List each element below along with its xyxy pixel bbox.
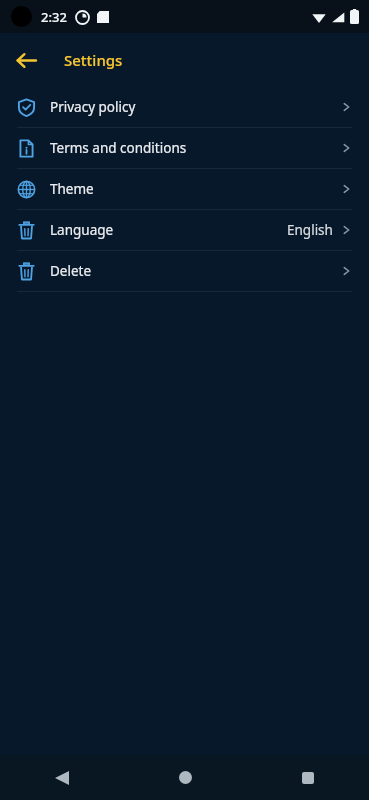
button[interactable]: Language xyxy=(0,210,369,250)
button[interactable]: Recent apps xyxy=(284,755,332,800)
staticText: Delete xyxy=(50,262,92,280)
button[interactable]: Theme xyxy=(0,169,369,209)
staticText: Settings xyxy=(64,50,123,70)
button[interactable]: Privacy policy xyxy=(0,87,369,127)
staticText: 2:32 xyxy=(41,8,67,26)
staticText: Theme xyxy=(50,180,94,198)
button[interactable]: Back xyxy=(8,42,44,78)
button[interactable]: Delete xyxy=(0,251,369,291)
staticText: Privacy policy xyxy=(50,98,136,116)
staticText: English xyxy=(287,221,333,239)
button[interactable]: Back xyxy=(38,755,86,800)
staticText: Language xyxy=(50,221,114,239)
button[interactable]: Terms and conditions xyxy=(0,128,369,168)
staticText: Terms and conditions xyxy=(50,139,187,157)
button[interactable]: Home xyxy=(161,755,209,800)
